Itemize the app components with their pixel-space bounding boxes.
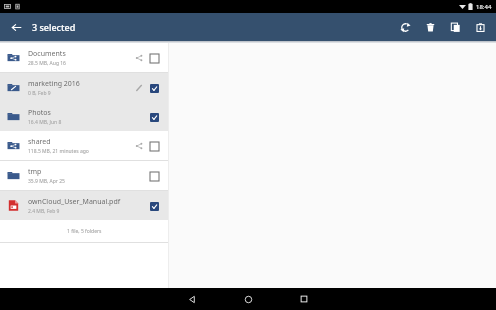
staticText: 16.4 MB, Jun 8 [28, 119, 62, 126]
staticText: 0 B, Feb 9 [28, 90, 51, 97]
button[interactable]: Shared [133, 140, 145, 152]
button[interactable]: Selected [148, 200, 160, 212]
staticText: 1 file, 5 folders [67, 228, 102, 235]
button[interactable]: Photos [0, 102, 168, 131]
button[interactable]: Move [470, 17, 490, 37]
button[interactable]: Shared [133, 52, 145, 64]
button[interactable]: Copy [445, 17, 465, 37]
button[interactable]: Recent apps [287, 288, 321, 310]
staticText: 35.9 MB, Apr 25 [28, 178, 65, 185]
button[interactable]: Not selected [148, 52, 160, 64]
staticText: shared [28, 137, 51, 147]
button[interactable]: Shared by link [133, 82, 145, 94]
staticText: 2.4 MB, Feb 9 [28, 208, 60, 215]
staticText: 18:44 [476, 3, 492, 11]
staticText: tmp [28, 167, 42, 177]
button[interactable]: Back [175, 288, 209, 310]
button[interactable]: Home [231, 288, 265, 310]
button[interactable]: Documents [0, 43, 168, 72]
button[interactable]: ownCloud_User_Manual.pdf [0, 191, 168, 220]
staticText: 3 selected [32, 21, 76, 33]
staticText: 28.5 MB, Aug 16 [28, 60, 66, 67]
staticText: Photos [28, 108, 51, 118]
button[interactable]: marketing 2016 [0, 73, 168, 102]
button[interactable]: shared [0, 131, 168, 160]
staticText: 118.5 MB, 21 minutes ago [28, 148, 89, 155]
button[interactable]: Back [7, 18, 25, 36]
button[interactable]: tmp [0, 161, 168, 190]
button[interactable]: Not selected [148, 170, 160, 182]
staticText: marketing 2016 [28, 79, 80, 89]
button[interactable]: Selected [148, 82, 160, 94]
staticText: Documents [28, 49, 66, 59]
button[interactable]: Not selected [148, 140, 160, 152]
staticText: ownCloud_User_Manual.pdf [28, 197, 121, 207]
button[interactable]: Delete [420, 17, 440, 37]
button[interactable]: Selected [148, 111, 160, 123]
button[interactable]: Sync [395, 17, 415, 37]
